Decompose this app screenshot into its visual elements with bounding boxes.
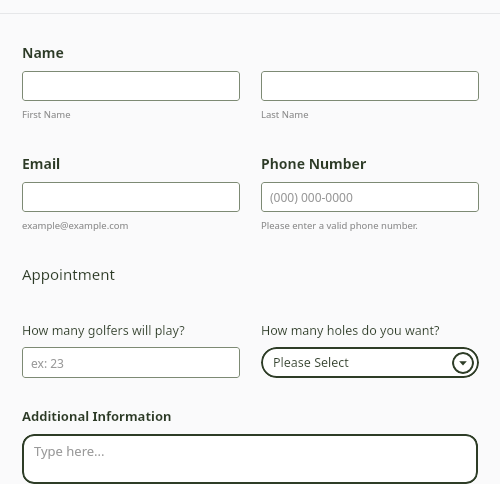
staticText: Please Select (273, 354, 349, 371)
staticText: Phone Number (261, 154, 367, 173)
staticText: ex: 23 (31, 355, 64, 371)
staticText: Please enter a valid phone number. (261, 219, 418, 232)
staticText: Last Name (261, 108, 309, 121)
staticText: Type here... (34, 442, 105, 460)
button[interactable]: Open dropdown (452, 352, 474, 374)
button[interactable]: ex: 23 (22, 347, 240, 378)
staticText: example@example.com (22, 219, 129, 232)
button[interactable]: Please Select (261, 347, 479, 378)
staticText: Email (22, 154, 61, 173)
staticText: Appointment (22, 264, 115, 284)
staticText: Additional Information (22, 407, 172, 425)
button[interactable] (22, 182, 240, 212)
staticText: How many golfers will play? (22, 322, 185, 339)
button[interactable]: Type here... (22, 434, 478, 484)
button[interactable] (22, 71, 240, 101)
staticText: First Name (22, 108, 71, 121)
staticText: (000) 000-0000 (270, 189, 353, 205)
button[interactable]: (000) 000-0000 (261, 182, 479, 212)
staticText: How many holes do you want? (261, 322, 440, 339)
staticText: Name (22, 43, 64, 62)
button[interactable] (261, 71, 479, 101)
